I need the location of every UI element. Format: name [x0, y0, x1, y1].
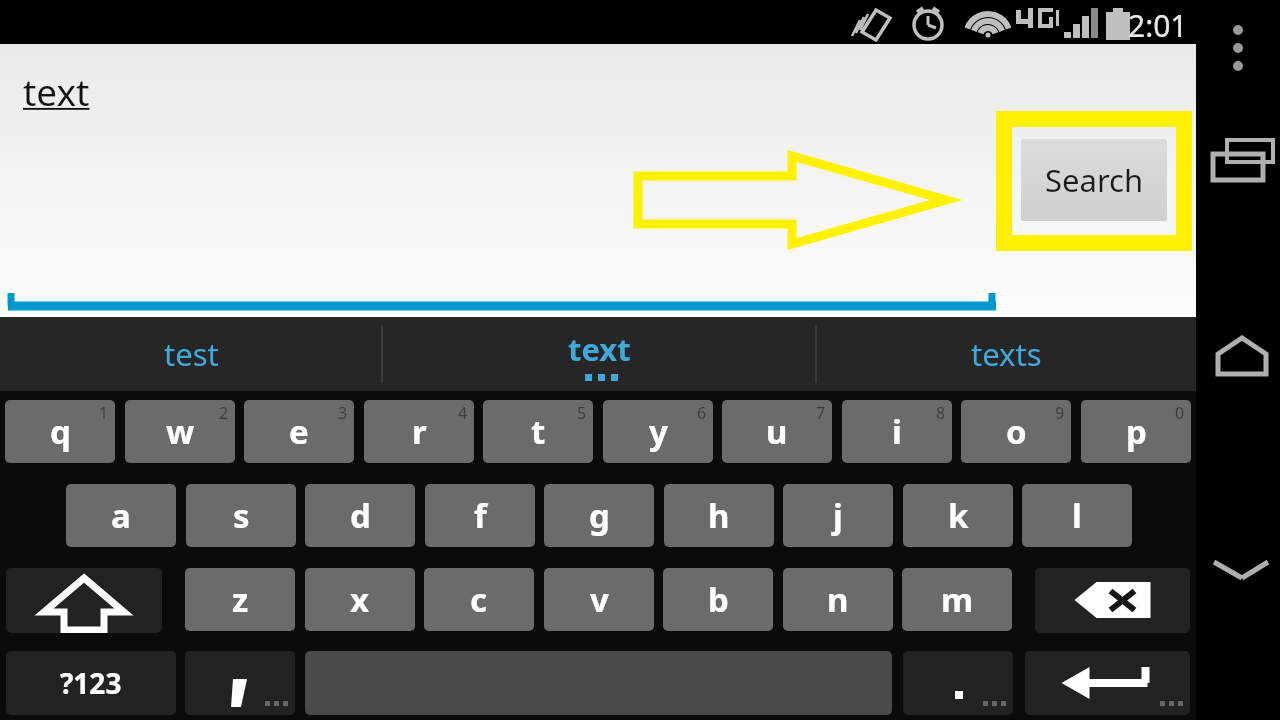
staticText: y: [649, 409, 668, 454]
button[interactable]: Home: [1204, 330, 1274, 390]
button[interactable]: m: [902, 568, 1012, 631]
button[interactable]: j: [783, 484, 893, 547]
button[interactable]: t: [483, 400, 593, 463]
button[interactable]: a: [66, 484, 176, 547]
button[interactable]: Search: [1021, 139, 1167, 221]
staticText: Search: [1045, 159, 1144, 201]
button[interactable]: x: [305, 568, 415, 631]
staticText: j: [833, 493, 843, 538]
staticText: 0: [1175, 402, 1185, 424]
button[interactable]: w: [125, 400, 235, 463]
staticText: 9: [1055, 402, 1065, 424]
button[interactable]: p: [1081, 400, 1191, 463]
staticText: e: [289, 409, 309, 454]
staticText: q: [50, 409, 71, 454]
staticText: ?123: [60, 664, 122, 702]
staticText: c: [470, 577, 488, 622]
staticText: 1: [99, 402, 109, 424]
staticText: o: [1006, 409, 1027, 454]
staticText: 2: [219, 402, 229, 424]
staticText: m: [941, 577, 974, 622]
button[interactable]: c: [424, 568, 534, 631]
staticText: 3: [338, 402, 348, 424]
button[interactable]: e: [244, 400, 354, 463]
button[interactable]: text: [382, 317, 816, 391]
button[interactable]: g: [544, 484, 654, 547]
button[interactable]: Recents: [1205, 130, 1271, 190]
button[interactable]: o: [961, 400, 1071, 463]
button[interactable]: z: [185, 568, 295, 631]
staticText: s: [233, 493, 250, 538]
button[interactable]: y: [603, 400, 713, 463]
staticText: k: [948, 493, 969, 538]
staticText: v: [590, 577, 609, 622]
button[interactable]: v: [544, 568, 654, 631]
button[interactable]: Back: [1204, 540, 1274, 600]
staticText: u: [766, 409, 788, 454]
button[interactable]: texts: [816, 317, 1196, 391]
button[interactable]: b: [663, 568, 773, 631]
button[interactable]: q: [5, 400, 115, 463]
button[interactable]: Comma: [185, 651, 295, 715]
button[interactable]: test: [0, 317, 382, 391]
staticText: x: [350, 577, 370, 622]
staticText: t: [531, 409, 546, 454]
staticText: 5: [577, 402, 587, 424]
button[interactable]: r: [364, 400, 474, 463]
staticText: text: [568, 328, 631, 370]
button[interactable]: n: [783, 568, 893, 631]
staticText: g: [589, 493, 610, 538]
staticText: b: [708, 577, 729, 622]
staticText: texts: [971, 333, 1042, 375]
staticText: r: [412, 409, 427, 454]
button[interactable]: h: [664, 484, 774, 547]
staticText: l: [1072, 493, 1082, 538]
button[interactable]: i: [842, 400, 952, 463]
button[interactable]: s: [186, 484, 296, 547]
button[interactable]: d: [305, 484, 415, 547]
staticText: 6: [697, 402, 707, 424]
button[interactable]: More options: [1222, 20, 1254, 68]
staticText: w: [166, 409, 195, 454]
button[interactable]: k: [903, 484, 1013, 547]
staticText: test: [164, 333, 219, 375]
staticText: i: [892, 409, 902, 454]
staticText: 8: [936, 402, 946, 424]
staticText: n: [827, 577, 849, 622]
staticText: p: [1126, 409, 1147, 454]
staticText: text: [23, 66, 90, 116]
staticText: h: [708, 493, 730, 538]
button[interactable]: ?123: [6, 651, 176, 715]
staticText: 7: [816, 402, 826, 424]
button[interactable]: Backspace: [1035, 568, 1190, 633]
button[interactable]: Shift: [6, 568, 162, 633]
button[interactable]: Enter: [1025, 651, 1190, 715]
staticText: a: [111, 493, 131, 538]
button[interactable]: l: [1022, 484, 1132, 547]
staticText: f: [474, 493, 487, 538]
button[interactable]: u: [722, 400, 832, 463]
staticText: 2:01: [1128, 5, 1188, 46]
staticText: 4: [458, 402, 468, 424]
button[interactable]: Period: [903, 651, 1013, 715]
staticText: d: [350, 493, 371, 538]
button[interactable]: f: [425, 484, 535, 547]
staticText: z: [232, 577, 249, 622]
